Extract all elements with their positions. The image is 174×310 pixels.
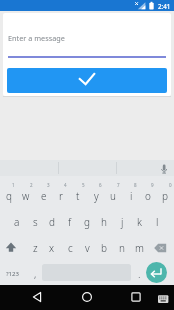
staticText: y xyxy=(94,189,99,203)
staticText: 5 xyxy=(82,182,85,188)
button[interactable]: ?123 xyxy=(2,265,22,283)
staticText: f xyxy=(68,215,72,229)
staticText: 3 xyxy=(47,182,50,188)
staticText: b xyxy=(101,241,107,255)
button[interactable]: w xyxy=(16,187,36,205)
button[interactable] xyxy=(150,237,174,259)
staticText: p xyxy=(162,189,168,203)
button[interactable]: r xyxy=(51,187,71,205)
button[interactable]: x xyxy=(42,239,62,257)
staticText: n xyxy=(119,241,125,255)
staticText: 6 xyxy=(99,182,102,188)
staticText: e xyxy=(41,189,47,203)
staticText: w xyxy=(22,189,30,203)
staticText: . xyxy=(138,267,141,281)
staticText: i xyxy=(130,189,133,203)
button[interactable]: y xyxy=(86,187,106,205)
button[interactable]: p xyxy=(155,187,174,205)
staticText: 9 xyxy=(151,182,154,188)
button[interactable] xyxy=(25,287,49,308)
button[interactable]: . xyxy=(129,265,149,283)
staticText: 8 xyxy=(134,182,137,188)
button[interactable]: i xyxy=(121,187,141,205)
button[interactable] xyxy=(124,287,148,308)
button[interactable]: e xyxy=(34,187,54,205)
staticText: m xyxy=(135,241,144,255)
staticText: z xyxy=(33,241,38,255)
button[interactable]: b xyxy=(94,239,114,257)
staticText: 2 xyxy=(30,182,33,188)
button[interactable]: n xyxy=(112,239,132,257)
staticText: x xyxy=(49,241,55,255)
staticText: 0 xyxy=(169,182,172,188)
staticText: q xyxy=(6,189,12,203)
button[interactable]: l xyxy=(147,213,167,231)
button[interactable] xyxy=(0,237,24,259)
button[interactable] xyxy=(154,290,172,308)
button[interactable]: k xyxy=(129,213,149,231)
button[interactable]: a xyxy=(7,213,27,231)
staticText: 7 xyxy=(117,182,120,188)
staticText: d xyxy=(49,215,55,229)
button[interactable]: d xyxy=(42,213,62,231)
button[interactable]: v xyxy=(77,239,97,257)
button[interactable]: t xyxy=(68,187,88,205)
button[interactable]: o xyxy=(138,187,158,205)
staticText: ?123 xyxy=(6,270,19,278)
staticText: a xyxy=(14,215,20,229)
button[interactable]: j xyxy=(112,213,132,231)
staticText: r xyxy=(59,189,63,203)
staticText: k xyxy=(137,215,142,229)
staticText: g xyxy=(84,215,90,229)
staticText: 2:41 xyxy=(158,2,171,10)
staticText: 1 xyxy=(12,182,15,188)
button[interactable]: , xyxy=(25,265,45,283)
button[interactable]: h xyxy=(94,213,114,231)
button[interactable]: q xyxy=(0,187,19,205)
staticText: s xyxy=(33,215,38,229)
staticText: c xyxy=(68,241,73,255)
staticText: h xyxy=(101,215,107,229)
button[interactable]: Enter a message xyxy=(8,32,98,44)
button[interactable]: f xyxy=(60,213,80,231)
button[interactable] xyxy=(7,68,167,93)
staticText: Enter a message xyxy=(8,33,65,43)
button[interactable] xyxy=(75,287,99,308)
button[interactable]: c xyxy=(60,239,80,257)
button[interactable] xyxy=(146,262,167,283)
button[interactable]: s xyxy=(25,213,45,231)
button[interactable]: z xyxy=(25,239,45,257)
button[interactable]: g xyxy=(77,213,97,231)
staticText: l xyxy=(156,215,159,229)
staticText: u xyxy=(110,189,116,203)
staticText: , xyxy=(34,267,37,281)
staticText: o xyxy=(145,189,151,203)
staticText: j xyxy=(121,215,124,229)
staticText: v xyxy=(85,241,90,255)
staticText: 4 xyxy=(64,182,67,188)
staticText: t xyxy=(76,189,80,203)
button[interactable]: u xyxy=(103,187,123,205)
button[interactable]: m xyxy=(129,239,149,257)
